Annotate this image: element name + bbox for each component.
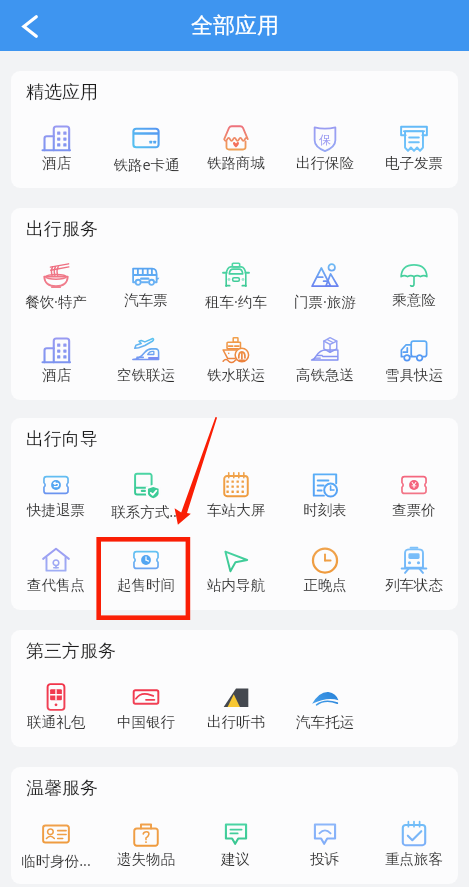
button[interactable]: Back <box>8 4 52 48</box>
staticText: 第三方服务 <box>26 640 116 663</box>
button[interactable]: 租车·约车 <box>191 250 280 325</box>
button[interactable]: 酒店 <box>11 113 101 188</box>
staticText: 起售时间 <box>117 576 175 594</box>
button[interactable]: 联通礼包 <box>11 672 101 747</box>
staticText: 乘意险 <box>392 291 436 309</box>
button[interactable]: 乘意险 <box>369 250 458 325</box>
button[interactable]: 高铁急送 <box>280 325 369 400</box>
button[interactable]: 查票价 <box>369 460 458 535</box>
staticText: 正晚点 <box>303 576 347 594</box>
button[interactable]: 中国银行 <box>101 672 191 747</box>
staticText: 时刻表 <box>303 501 347 519</box>
staticText: 出行服务 <box>26 218 98 241</box>
staticText: 联通礼包 <box>27 713 85 731</box>
staticText: 酒店 <box>42 366 71 384</box>
staticText: 汽车托运 <box>296 713 354 731</box>
staticText: 铁路商城 <box>207 154 265 172</box>
button[interactable]: 雪具快运 <box>369 325 458 400</box>
staticText: 铁路e卡通 <box>113 154 180 174</box>
button[interactable]: 重点旅客 <box>369 809 458 884</box>
staticText: 铁水联运 <box>207 366 265 384</box>
button[interactable]: 临时身份... <box>11 809 101 884</box>
button[interactable]: 正晚点 <box>280 535 369 610</box>
staticText: 全部应用 <box>191 12 279 40</box>
button[interactable]: 建议 <box>191 809 280 884</box>
button[interactable]: 车站大屏 <box>191 460 280 535</box>
staticText: 重点旅客 <box>385 850 443 868</box>
staticText: 查票价 <box>392 501 436 519</box>
staticText: 空铁联运 <box>117 366 175 384</box>
staticText: 雪具快运 <box>385 366 443 384</box>
staticText: 电子发票 <box>385 154 443 172</box>
staticText: 快捷退票 <box>27 501 85 519</box>
button[interactable]: 电子发票 <box>369 113 458 188</box>
staticText: 酒店 <box>42 154 71 172</box>
button[interactable]: 起售时间 <box>101 535 191 610</box>
staticText: 保 <box>319 132 331 147</box>
button[interactable]: 保 <box>280 113 369 188</box>
button[interactable]: 铁路商城 <box>191 113 280 188</box>
button[interactable]: 时刻表 <box>280 460 369 535</box>
staticText: 遗失物品 <box>117 850 175 868</box>
staticText: 中国银行 <box>117 713 175 731</box>
staticText: 查代售点 <box>27 576 85 594</box>
button[interactable]: 站内导航 <box>191 535 280 610</box>
staticText: 投诉 <box>310 850 339 868</box>
button[interactable]: 铁水联运 <box>191 325 280 400</box>
button[interactable]: 汽车托运 <box>280 672 369 747</box>
staticText: 出行保险 <box>296 154 354 172</box>
staticText: 汽车票 <box>124 291 168 309</box>
button[interactable]: 快捷退票 <box>11 460 101 535</box>
button[interactable]: 空铁联运 <box>101 325 191 400</box>
button[interactable]: 查代售点 <box>11 535 101 610</box>
staticText: 精选应用 <box>26 81 98 104</box>
button[interactable]: 联系方式... <box>101 460 191 535</box>
staticText: 联系方式... <box>111 501 181 521</box>
button[interactable]: 遗失物品 <box>101 809 191 884</box>
staticText: 出行向导 <box>26 428 98 451</box>
button[interactable]: 门票·旅游 <box>280 250 369 325</box>
button[interactable]: 酒店 <box>11 325 101 400</box>
button[interactable]: 汽车票 <box>101 250 191 325</box>
staticText: 出行听书 <box>207 713 265 731</box>
button[interactable]: 铁路e卡通 <box>101 113 191 188</box>
staticText: 建议 <box>221 850 250 868</box>
staticText: 站内导航 <box>207 576 265 594</box>
staticText: 高铁急送 <box>296 366 354 384</box>
staticText: 列车状态 <box>385 576 443 594</box>
button[interactable]: 列车状态 <box>369 535 458 610</box>
staticText: 餐饮·特产 <box>25 291 87 311</box>
staticText: 温馨服务 <box>26 777 98 800</box>
staticText: 门票·旅游 <box>294 291 356 311</box>
button[interactable]: 出行听书 <box>191 672 280 747</box>
button[interactable]: 餐饮·特产 <box>11 250 101 325</box>
staticText: 租车·约车 <box>205 291 267 311</box>
staticText: 车站大屏 <box>207 501 265 519</box>
staticText: 临时身份... <box>21 850 91 870</box>
button[interactable]: 投诉 <box>280 809 369 884</box>
